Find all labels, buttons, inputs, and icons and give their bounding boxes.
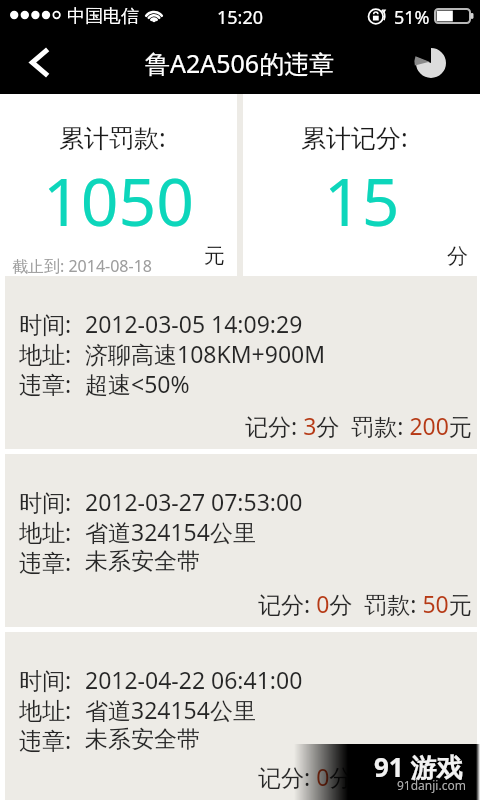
- staticText: 15: [324, 155, 400, 245]
- staticText: 中国电信: [67, 5, 139, 28]
- button[interactable]: 时间:: [5, 632, 477, 800]
- staticText: 时间:: [19, 308, 72, 338]
- staticText: 未系安全带: [85, 547, 200, 576]
- staticText: 记分: 3分 罚款: 200元: [245, 410, 472, 441]
- staticText: 91 游戏: [374, 749, 463, 785]
- staticText: 记分: 0分 罚款: 50元: [258, 588, 472, 619]
- staticText: 记分: 0分 罚款: 50元: [258, 761, 472, 792]
- staticText: 济聊高速108KM+900M: [85, 338, 326, 368]
- button[interactable]: 时间:: [5, 454, 477, 627]
- staticText: 51%: [394, 5, 430, 30]
- staticText: 违章:: [19, 368, 72, 398]
- staticText: 未系安全带: [85, 725, 200, 754]
- staticText: 超速<50%: [85, 368, 190, 398]
- staticText: 地址:: [19, 516, 72, 546]
- staticText: 截止到: 2014-08-18: [12, 255, 152, 277]
- staticText: 分: [447, 243, 468, 269]
- staticText: 地址:: [19, 338, 72, 368]
- staticText: 元: [204, 243, 225, 269]
- staticText: 违章:: [19, 546, 72, 576]
- staticText: 2012-03-05 14:09:29: [85, 308, 303, 338]
- button[interactable]: 时间:: [5, 276, 477, 449]
- staticText: 鲁A2A506的违章: [145, 46, 335, 80]
- staticText: 15:20: [217, 5, 264, 30]
- staticText: 违章:: [19, 724, 72, 754]
- staticText: 累计记分:: [301, 120, 408, 154]
- staticText: 1050: [43, 155, 195, 245]
- staticText: 省道324154公里: [85, 694, 256, 724]
- staticText: 累计罚款:: [59, 120, 166, 154]
- staticText: 省道324154公里: [85, 516, 256, 546]
- button[interactable]: Back: [0, 36, 60, 94]
- staticText: 91danji.com: [397, 777, 466, 793]
- staticText: 2012-04-22 06:41:00: [85, 664, 303, 694]
- staticText: 地址:: [19, 694, 72, 724]
- staticText: 时间:: [19, 664, 72, 694]
- staticText: 2012-03-27 07:53:00: [85, 486, 303, 516]
- staticText: 时间:: [19, 486, 72, 516]
- button[interactable]: Statistics: [422, 36, 480, 94]
